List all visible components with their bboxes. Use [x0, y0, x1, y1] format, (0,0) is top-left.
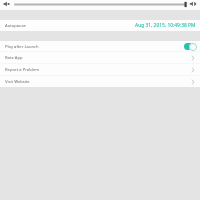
staticText: Aug 31, 2015, 10:49:38 PM [135, 22, 196, 29]
staticText: Play after Launch [5, 44, 39, 50]
button[interactable]: Autopause [0, 20, 200, 31]
staticText: Report a Problem [5, 67, 40, 73]
button[interactable]: Report a Problem [0, 64, 200, 76]
button[interactable]: Rate App [0, 52, 200, 64]
button[interactable]: Volume up [190, 0, 200, 10]
staticText: Rate App [5, 55, 23, 61]
staticText: Autopause [5, 23, 26, 29]
staticText: Visit Website [5, 79, 30, 85]
button[interactable]: Play after Launch [0, 41, 200, 52]
button[interactable]: Visit Website [0, 76, 200, 87]
button[interactable]: Mute [0, 0, 10, 10]
